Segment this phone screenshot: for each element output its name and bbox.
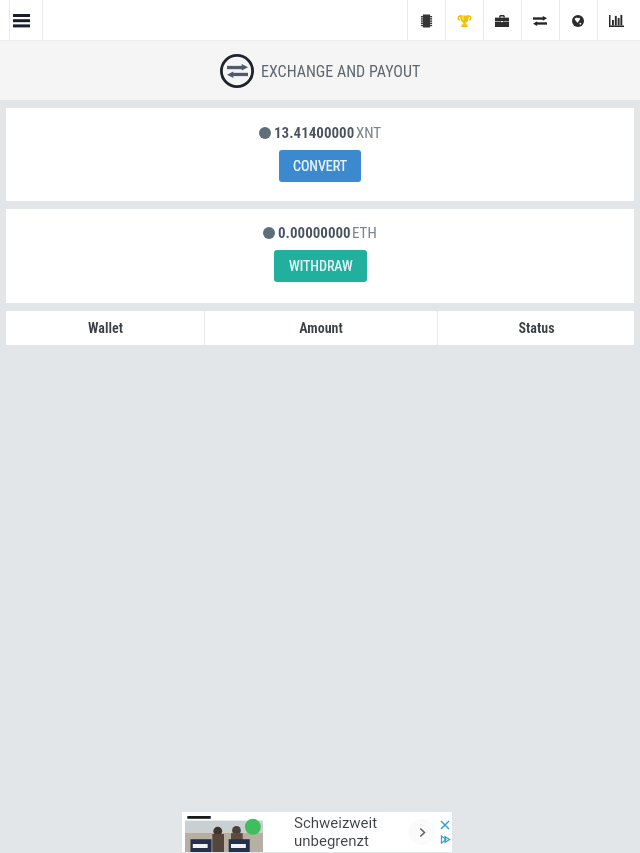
button[interactable]: Language <box>559 0 597 41</box>
staticText: CONVERT <box>293 158 348 174</box>
button[interactable]: Ad choices <box>440 834 450 844</box>
staticText: 13.41400000 <box>274 124 355 142</box>
staticText: WITHDRAW <box>289 258 353 274</box>
button[interactable]: Menu <box>10 0 42 41</box>
button[interactable]: Schweizweit <box>182 812 452 852</box>
button[interactable]: Awards <box>445 0 483 41</box>
button[interactable]: Exchange <box>521 0 559 41</box>
staticText: Wallet <box>88 320 123 336</box>
button[interactable]: Chip <box>407 0 445 41</box>
button[interactable]: Close ad <box>440 820 450 830</box>
button[interactable]: CONVERT <box>279 150 361 182</box>
staticText: XNT <box>356 124 382 142</box>
staticText: ETH <box>352 224 377 242</box>
button[interactable]: Statistics <box>597 0 635 41</box>
staticText: Status <box>518 320 555 336</box>
staticText: unbegrenzt <box>294 832 369 850</box>
button[interactable]: Portfolio <box>483 0 521 41</box>
staticText: 0.00000000 <box>278 224 351 242</box>
staticText: Schweizweit <box>294 814 378 832</box>
staticText: EXCHANGE AND PAYOUT <box>261 62 421 81</box>
button[interactable]: WITHDRAW <box>274 250 367 282</box>
staticText: Amount <box>299 320 343 336</box>
button[interactable]: Open ad <box>409 819 435 845</box>
